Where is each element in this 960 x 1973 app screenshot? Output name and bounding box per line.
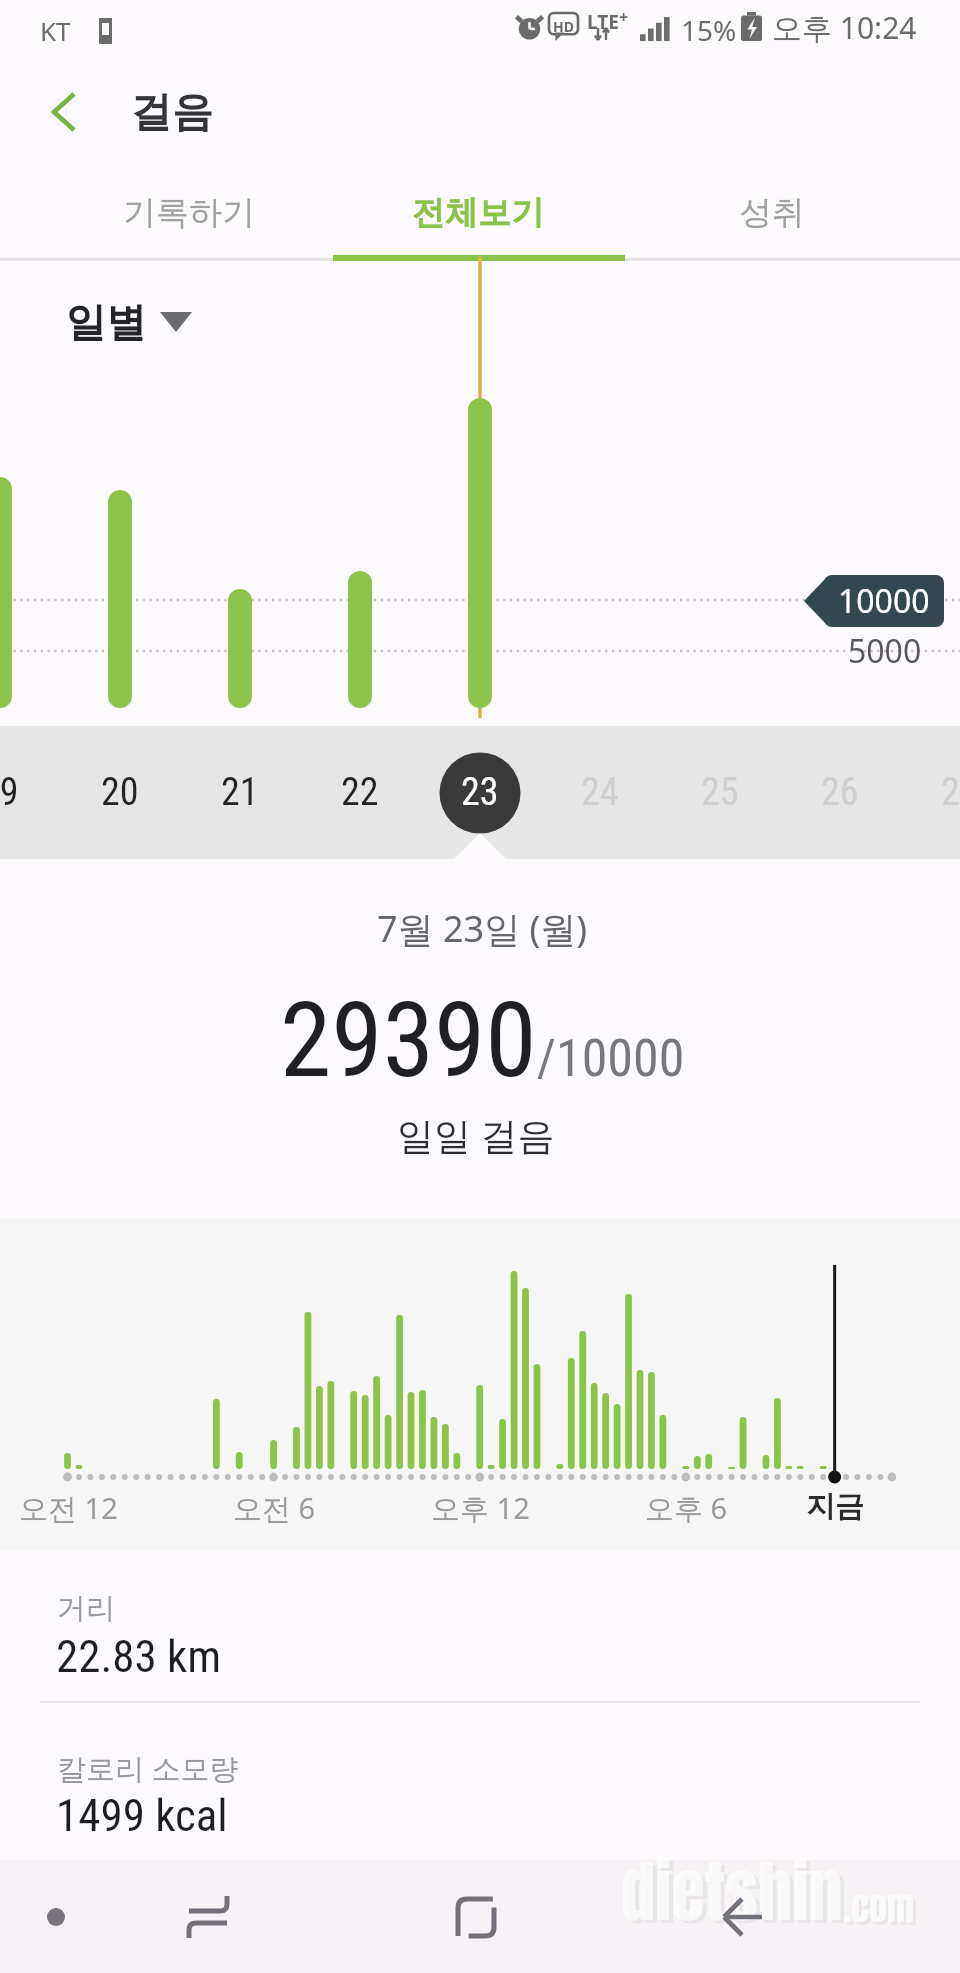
button[interactable]: Menu: [26, 1887, 86, 1947]
staticText: 26: [821, 770, 859, 815]
button[interactable]: 거리: [0, 1551, 960, 1703]
staticText: 7월 23일 (월): [377, 904, 588, 953]
staticText: 21: [221, 770, 259, 815]
staticText: 22: [341, 770, 379, 815]
staticText: 10000: [838, 579, 930, 623]
staticText: 걸음: [131, 87, 213, 139]
staticText: 23: [461, 770, 499, 815]
button[interactable]: Recent apps: [168, 1877, 248, 1957]
staticText: 29390/10000: [280, 980, 685, 1102]
staticText: dietshin: [621, 1840, 843, 1942]
staticText: 20: [101, 770, 139, 815]
staticText: 성취: [739, 192, 805, 234]
staticText: HD: [553, 17, 574, 36]
staticText: 1499 kcal: [56, 1789, 228, 1842]
staticText: +: [619, 6, 629, 28]
button[interactable]: Home: [440, 1881, 512, 1953]
staticText: 칼로리 소모량: [57, 1748, 239, 1788]
button[interactable]: Back: [28, 76, 100, 148]
staticText: 전체보기: [412, 192, 544, 234]
staticText: 지금: [806, 1488, 864, 1525]
staticText: 19: [0, 770, 19, 815]
staticText: KT: [40, 13, 71, 48]
staticText: 일일 걸음: [397, 1109, 555, 1160]
button[interactable]: 성취: [642, 169, 902, 257]
staticText: 오전 6: [233, 1488, 316, 1528]
staticText: 오후 12: [431, 1488, 530, 1528]
staticText: LTE: [587, 9, 619, 35]
button[interactable]: 전체보기: [348, 169, 608, 257]
button[interactable]: 기록하기: [59, 169, 319, 257]
staticText: 5000: [848, 629, 922, 673]
staticText: 25: [701, 770, 739, 815]
staticText: 기록하기: [123, 192, 255, 234]
staticText: .com: [846, 1883, 918, 1937]
button[interactable]: Back: [706, 1881, 778, 1953]
staticText: 거리: [57, 1590, 115, 1627]
staticText: 일별: [66, 297, 146, 347]
staticText: 24: [581, 770, 619, 815]
staticText: 22.83 km: [56, 1630, 222, 1683]
staticText: 오후 6: [645, 1488, 728, 1528]
button[interactable]: 일별: [66, 286, 206, 358]
staticText: 오전 12: [19, 1488, 118, 1528]
staticText: 15%: [681, 11, 737, 49]
staticText: .com: [843, 1880, 915, 1934]
staticText: dietshin: [625, 1843, 847, 1945]
button[interactable]: 칼로리 소모량: [0, 1703, 960, 1860]
staticText: 오후 10:24: [772, 7, 917, 48]
staticText: 27: [941, 770, 960, 815]
